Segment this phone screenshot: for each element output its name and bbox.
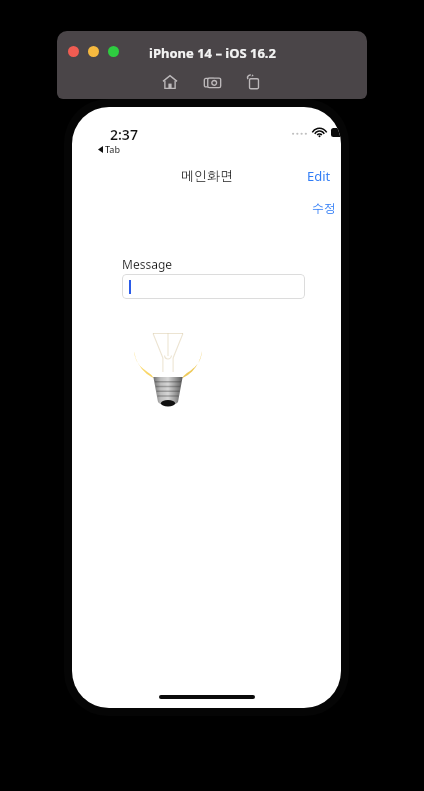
button[interactable]: Screenshot: [197, 67, 227, 97]
button[interactable]: Tab: [96, 142, 123, 156]
staticText: 2:37: [110, 125, 138, 144]
button[interactable]: 수정: [304, 196, 341, 219]
staticText: 수정: [312, 200, 336, 215]
staticText: Edit: [307, 167, 331, 185]
button[interactable]: Edit: [297, 162, 341, 190]
staticText: 메인화면: [181, 167, 233, 183]
button[interactable]: [68, 46, 79, 57]
button[interactable]: Home: [155, 67, 185, 97]
staticText: iPhone 14 – iOS 16.2: [149, 44, 276, 62]
staticText: Tab: [105, 143, 121, 155]
button[interactable]: [122, 274, 305, 299]
button[interactable]: Rotate: [239, 67, 269, 97]
button[interactable]: [108, 46, 119, 57]
staticText: Message: [122, 256, 173, 272]
button[interactable]: [88, 46, 99, 57]
